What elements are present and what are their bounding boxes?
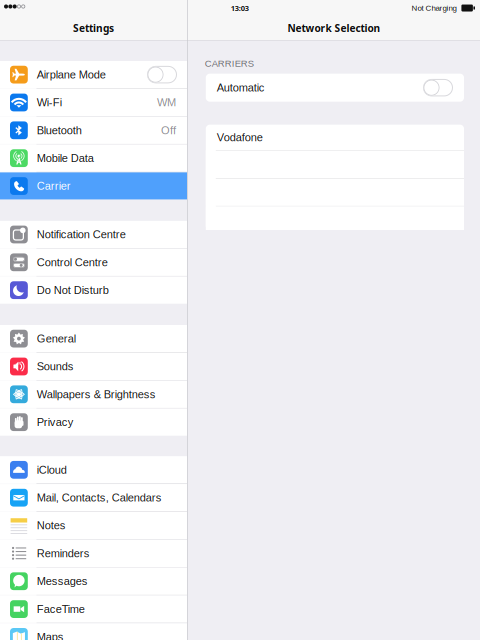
button[interactable]: Wallpapers & Brightness xyxy=(0,381,187,408)
button[interactable]: Bluetooth xyxy=(0,117,187,144)
button[interactable]: Mobile Data xyxy=(0,145,187,172)
staticText: Messages xyxy=(37,575,88,587)
button[interactable]: iCloud xyxy=(0,456,187,483)
staticText: Off xyxy=(161,124,176,136)
staticText: Vodafone xyxy=(217,131,263,144)
staticText: Network Selection xyxy=(287,21,380,35)
button[interactable]: Reminders xyxy=(0,540,187,567)
button[interactable]: Messages xyxy=(0,568,187,595)
button[interactable]: Maps xyxy=(0,623,187,640)
staticText: Wi-Fi xyxy=(37,96,62,109)
staticText: Maps xyxy=(37,631,64,640)
staticText: General xyxy=(37,332,76,345)
button[interactable]: Notification Centre xyxy=(0,221,187,248)
button[interactable]: Airplane Mode xyxy=(0,61,187,88)
staticText: Sounds xyxy=(37,360,74,373)
button[interactable]: Privacy xyxy=(0,409,187,436)
button[interactable]: Mail, Contacts, Calendars xyxy=(0,484,187,511)
staticText: Carrier xyxy=(37,180,71,192)
staticText: 13:03 xyxy=(231,3,249,13)
button[interactable]: FaceTime xyxy=(0,595,187,623)
staticText: Notification Centre xyxy=(37,228,126,241)
button[interactable]: Carrier xyxy=(0,172,187,200)
button[interactable]: Control Centre xyxy=(0,249,187,276)
button[interactable]: Do Not Disturb xyxy=(0,276,187,304)
staticText: Reminders xyxy=(37,547,90,560)
staticText: Bluetooth xyxy=(37,124,82,136)
staticText: Notes xyxy=(37,519,66,532)
staticText: Settings xyxy=(73,21,114,35)
staticText: WM xyxy=(157,96,176,109)
staticText: CARRIERS xyxy=(205,58,254,69)
staticText: Mail, Contacts, Calendars xyxy=(37,491,162,504)
staticText: Control Centre xyxy=(37,256,108,268)
staticText: Privacy xyxy=(37,416,74,428)
button[interactable]: Wi-Fi xyxy=(0,89,187,116)
staticText: FaceTime xyxy=(37,603,85,615)
staticText: Airplane Mode xyxy=(37,68,106,81)
staticText: Do Not Disturb xyxy=(37,284,109,296)
button[interactable]: Sounds xyxy=(0,353,187,380)
button[interactable]: Notes xyxy=(0,512,187,539)
staticText: Automatic xyxy=(217,81,265,94)
staticText: Not Charging xyxy=(411,4,456,12)
staticText: Mobile Data xyxy=(37,152,94,164)
staticText: iCloud xyxy=(37,464,67,476)
staticText: Wallpapers & Brightness xyxy=(37,388,156,400)
button[interactable]: General xyxy=(0,325,187,352)
